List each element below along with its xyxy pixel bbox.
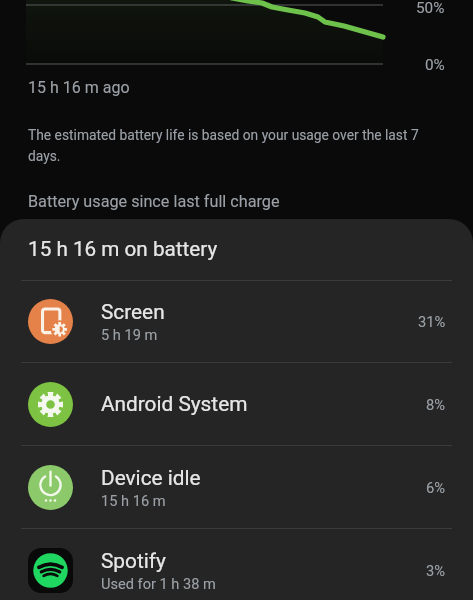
- button[interactable]: Spotify: [0, 529, 473, 600]
- button[interactable]: Screen: [0, 281, 473, 362]
- staticText: 5 h 19 m: [101, 326, 158, 343]
- button[interactable]: Device idle: [0, 446, 473, 528]
- staticText: Screen: [101, 300, 165, 324]
- staticText: 15 h 16 m ago: [28, 78, 130, 97]
- staticText: 50%: [416, 0, 445, 17]
- staticText: 15 h 16 m on battery: [28, 237, 218, 261]
- button[interactable]: Android System: [0, 363, 473, 445]
- staticText: 0%: [425, 56, 445, 74]
- staticText: Device idle: [101, 466, 201, 490]
- staticText: Android System: [101, 392, 248, 416]
- staticText: 8%: [426, 396, 446, 413]
- staticText: Battery usage since last full charge: [28, 192, 280, 211]
- staticText: 31%: [418, 313, 446, 330]
- staticText: Used for 1 h 38 m: [101, 575, 216, 592]
- staticText: 3%: [426, 562, 446, 579]
- staticText: 6%: [426, 479, 446, 496]
- staticText: 15 h 16 m: [101, 492, 166, 509]
- staticText: Spotify: [101, 549, 166, 573]
- staticText: The estimated battery life is based on y…: [28, 127, 424, 165]
